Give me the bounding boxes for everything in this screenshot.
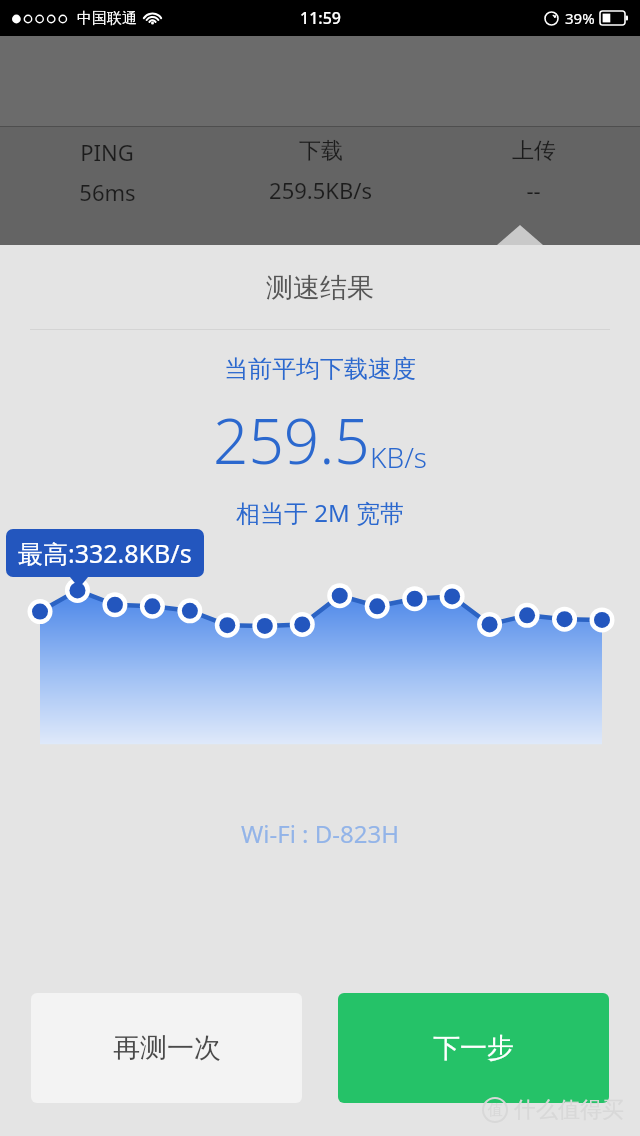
staticText: PING [80,137,134,167]
staticText: 再测一次 [113,1031,221,1065]
staticText: Wi-Fi : D-823H [0,817,640,850]
staticText: 相当于 2M 宽带 [0,496,640,529]
button[interactable]: 再测一次 [31,993,302,1103]
staticText: 中国联通 [77,9,137,28]
staticText: 最高:332.8KB/s [18,536,192,570]
staticText: 什么值得买 [514,1096,624,1124]
staticText: -- [526,175,541,205]
staticText: 测速结果 [0,271,640,305]
staticText: 下载 [299,137,343,165]
staticText: 下一步 [433,1031,514,1065]
staticText: 259.5 [213,398,370,482]
staticText: 39% [565,8,595,28]
staticText: 值 [488,1101,503,1120]
staticText: 当前平均下载速度 [0,354,640,384]
staticText: 11:59 [300,7,341,29]
staticText: 259.5KB/s [269,175,372,205]
staticText: KB/s [370,438,427,476]
staticText: 56ms [79,177,136,207]
button[interactable]: 下一步 [338,993,609,1103]
staticText: 上传 [512,137,556,165]
